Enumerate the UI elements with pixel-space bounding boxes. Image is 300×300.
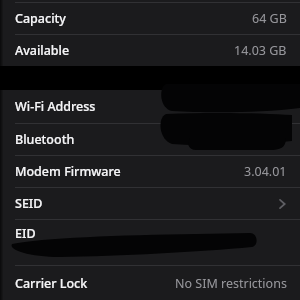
button[interactable]: Carrier Lock xyxy=(0,266,300,300)
other: Open SEID xyxy=(277,199,287,209)
button[interactable]: SEID xyxy=(0,188,300,219)
staticText: Capacity xyxy=(15,10,66,27)
staticText: EID xyxy=(15,225,36,242)
staticText: Modem Firmware xyxy=(15,163,121,180)
button[interactable]: Available xyxy=(0,35,300,66)
staticText: No SIM restrictions xyxy=(175,275,287,292)
button[interactable]: Wi-Fi Address xyxy=(0,90,300,123)
button[interactable]: EID xyxy=(0,220,300,265)
staticText: Wi-Fi Address xyxy=(15,98,96,115)
button[interactable]: Bluetooth xyxy=(0,124,300,155)
staticText: 64 GB xyxy=(252,10,287,27)
button[interactable]: Capacity xyxy=(0,3,300,34)
staticText: Bluetooth xyxy=(15,131,75,148)
staticText: Carrier Lock xyxy=(15,275,88,292)
staticText: 14.03 GB xyxy=(234,42,287,59)
staticText: 3.04.01 xyxy=(244,163,287,180)
staticText: SEID xyxy=(15,195,43,212)
staticText: Available xyxy=(15,42,70,59)
button[interactable]: Modem Firmware xyxy=(0,156,300,187)
